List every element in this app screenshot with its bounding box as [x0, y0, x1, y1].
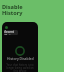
- staticText: Disable History: [2, 3, 23, 17]
- button[interactable]: Recent Chats: [4, 30, 18, 35]
- staticText: Recent Chats: [4, 30, 18, 35]
- staticText: Your chat history is no longer being sav…: [5, 63, 35, 72]
- button[interactable]: App icon: [5, 26, 8, 29]
- staticText: History Disabled: [7, 56, 34, 61]
